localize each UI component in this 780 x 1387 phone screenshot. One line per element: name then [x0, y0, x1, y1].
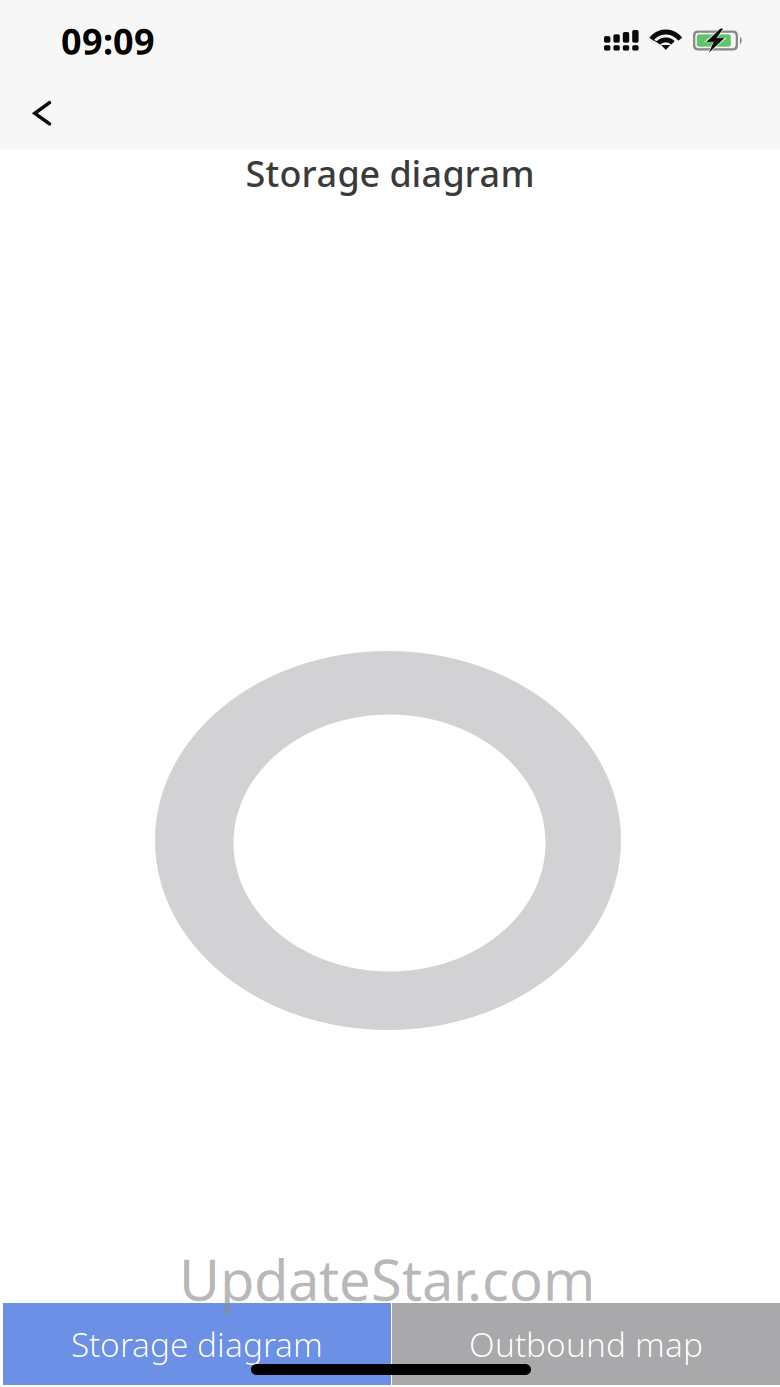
staticText: 09:09	[61, 17, 155, 65]
staticText: Storage diagram	[71, 1322, 323, 1366]
staticText: Outbound map	[469, 1322, 703, 1366]
staticText: UpdateStar.com	[179, 1242, 595, 1316]
button[interactable]: Storage diagram	[3, 1303, 391, 1385]
staticText: Storage diagram	[245, 149, 534, 197]
button[interactable]: Outbound map	[392, 1303, 780, 1385]
button[interactable]: Back	[0, 70, 88, 149]
